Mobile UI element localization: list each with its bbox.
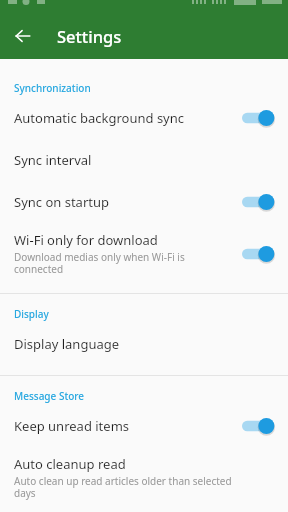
staticText: Auto cleanup read <box>14 455 126 473</box>
staticText: Settings <box>57 25 122 47</box>
button[interactable]: Automatic background sync <box>0 97 288 139</box>
button[interactable]: Display language <box>0 323 288 365</box>
button[interactable]: Sync interval <box>0 139 288 181</box>
staticText: Synchronization <box>14 81 91 95</box>
button[interactable]: Keep unread items <box>0 405 288 447</box>
staticText: Download medias only when Wi-Fi is conne… <box>14 250 212 276</box>
button[interactable]: Auto cleanup read <box>0 447 288 508</box>
staticText: Message Store <box>14 389 85 403</box>
button[interactable]: Sync on startup <box>0 181 288 223</box>
staticText: Automatic background sync <box>14 109 185 127</box>
staticText: Sync on startup <box>14 193 110 211</box>
staticText: Keep unread items <box>14 417 130 435</box>
staticText: Auto clean up read articles older than s… <box>14 474 252 500</box>
staticText: Display <box>14 307 49 321</box>
staticText: Display language <box>14 335 120 353</box>
staticText: Wi-Fi only for download <box>14 231 158 249</box>
staticText: Sync interval <box>14 151 92 169</box>
button[interactable]: Back <box>8 21 38 51</box>
button[interactable]: Wi-Fi only for download <box>0 223 288 284</box>
